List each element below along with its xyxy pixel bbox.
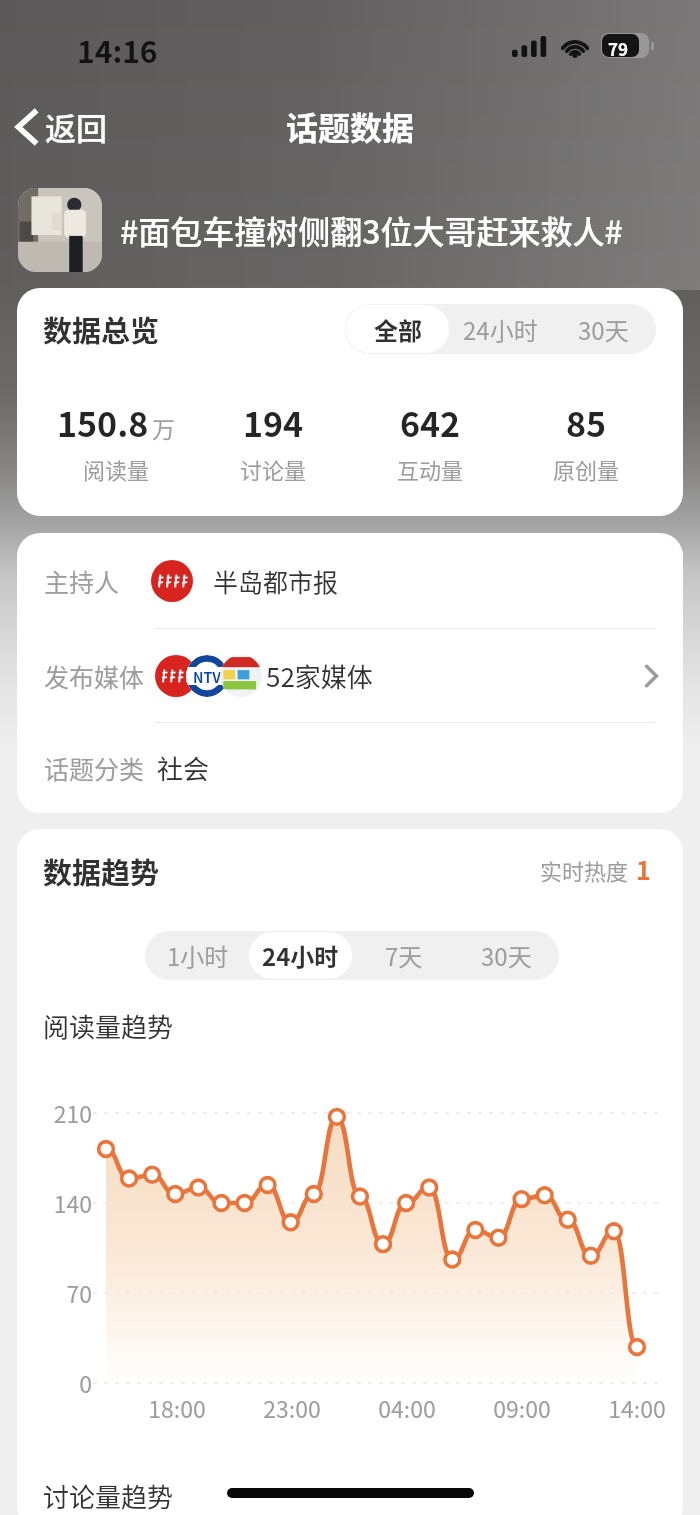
staticText: 互动量 <box>397 453 464 485</box>
staticText: 1小时 <box>167 938 229 973</box>
staticText: 642 <box>400 398 461 447</box>
button[interactable]: 全部 <box>346 305 449 353</box>
staticText: 主持人 <box>44 563 120 599</box>
button[interactable]: 发布媒体 <box>17 629 683 722</box>
staticText: 14:00 <box>567 1391 683 1424</box>
other: More media <box>645 665 658 687</box>
staticText: 发布媒体 <box>44 658 145 694</box>
staticText: 09:00 <box>452 1391 592 1424</box>
staticText: 7天 <box>385 938 423 973</box>
staticText: 30天 <box>481 938 532 973</box>
staticText: 140 <box>34 1186 92 1219</box>
staticText: 阅读量趋势 <box>43 1007 174 1045</box>
staticText: 阅读量 <box>83 453 150 485</box>
button[interactable]: 24小时 <box>249 932 352 979</box>
staticText: 24小时 <box>463 312 538 347</box>
staticText: 万 <box>152 411 175 444</box>
staticText: 04:00 <box>337 1391 477 1424</box>
staticText: 23:00 <box>222 1391 362 1424</box>
staticText: 话题数据 <box>286 103 415 149</box>
staticText: #面包车撞树侧翻3位大哥赶来救人# <box>120 207 623 253</box>
staticText: 79 <box>608 36 629 61</box>
staticText: 85 <box>566 398 607 447</box>
staticText: 数据总览 <box>43 308 160 350</box>
staticText: 讨论量 <box>240 453 307 485</box>
staticText: 实时热度 <box>540 854 629 886</box>
staticText: 讨论量趋势 <box>43 1477 174 1515</box>
staticText: 52家媒体 <box>266 657 373 695</box>
staticText: 14:16 <box>77 28 158 71</box>
staticText: 半岛都市报 <box>213 563 339 599</box>
staticText: 194 <box>243 398 304 447</box>
staticText: NTV <box>193 667 221 685</box>
button[interactable]: 返回 <box>10 98 113 155</box>
staticText: 话题分类 <box>44 750 145 786</box>
staticText: 18:00 <box>107 1391 247 1424</box>
button[interactable]: 主持人 <box>17 533 683 628</box>
staticText: 1 <box>636 851 651 887</box>
staticText: 24小时 <box>262 938 339 973</box>
staticText: 150.8 <box>57 398 149 447</box>
staticText: 社会 <box>157 749 210 787</box>
staticText: 210 <box>34 1096 92 1129</box>
button[interactable]: 24小时 <box>449 305 552 353</box>
staticText: 返回 <box>45 104 107 149</box>
staticText: 30天 <box>578 312 629 347</box>
button[interactable]: 30天 <box>552 305 655 353</box>
button[interactable]: 1小时 <box>146 932 249 979</box>
staticText: 70 <box>34 1276 92 1309</box>
staticText: 0 <box>34 1366 92 1399</box>
staticText: 原创量 <box>553 453 620 485</box>
button[interactable]: 30天 <box>455 932 558 979</box>
staticText: 数据趋势 <box>43 850 160 892</box>
button[interactable]: 7天 <box>352 932 455 979</box>
staticText: 全部 <box>374 312 422 347</box>
